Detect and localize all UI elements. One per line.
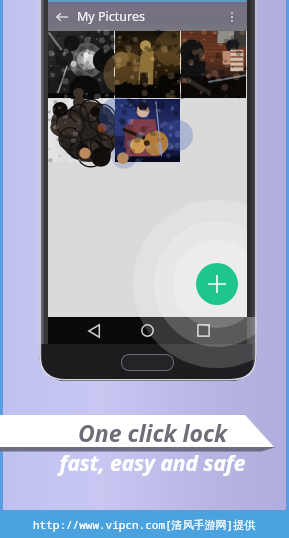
button[interactable] <box>115 31 180 98</box>
staticText: http://www.vipcn.com[清风手游网]提供 <box>33 517 256 532</box>
button[interactable]: Back <box>48 3 76 31</box>
button[interactable]: Recents <box>191 318 216 343</box>
staticText: My Pictures <box>77 8 145 25</box>
button[interactable]: More options <box>219 4 245 30</box>
staticText: One click lock <box>78 417 228 448</box>
button[interactable] <box>181 31 246 98</box>
button[interactable] <box>48 99 114 162</box>
staticText: fast, easy and safe <box>8 449 289 478</box>
button[interactable] <box>115 99 180 162</box>
button[interactable]: Home <box>135 318 160 343</box>
button[interactable]: Add <box>196 263 238 305</box>
button[interactable]: Back <box>81 318 106 343</box>
button[interactable] <box>48 31 114 98</box>
